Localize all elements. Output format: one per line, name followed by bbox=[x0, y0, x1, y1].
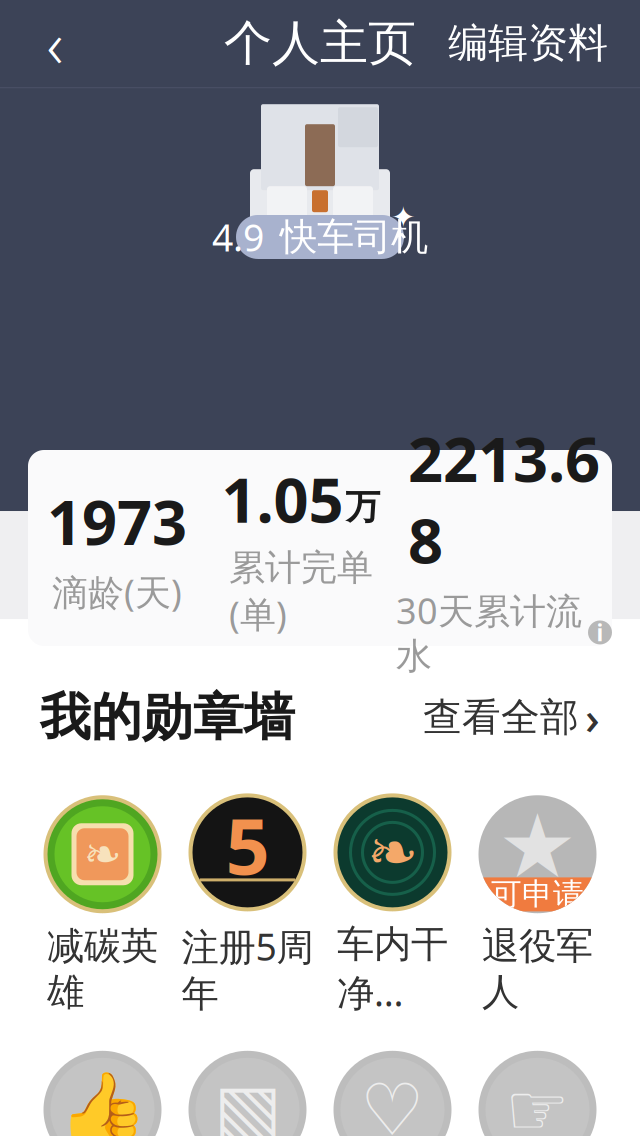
staticText: ★ bbox=[498, 796, 577, 896]
staticText: 滴龄(天) bbox=[52, 568, 182, 616]
staticText: 注册5周年 bbox=[181, 921, 313, 1017]
staticText: 查看全部 bbox=[423, 693, 579, 741]
staticText: 可申请 bbox=[491, 876, 584, 913]
staticText: 我的勋章墙 bbox=[40, 686, 295, 748]
staticText: 1973 bbox=[47, 480, 187, 562]
button[interactable]: 编辑资料 bbox=[436, 8, 620, 78]
staticText: i bbox=[596, 617, 603, 647]
staticText: 累计完单(单) bbox=[229, 546, 373, 638]
staticText: ♡ bbox=[360, 1069, 425, 1136]
button[interactable]: ❧ bbox=[30, 795, 175, 1015]
staticText: 30天累计流水 bbox=[396, 586, 582, 678]
button[interactable]: 查看全部 bbox=[409, 679, 600, 755]
staticText: › bbox=[585, 687, 600, 747]
staticText: 快车司机 bbox=[280, 214, 428, 260]
button[interactable]: Back bbox=[20, 8, 90, 78]
button[interactable]: ❧ bbox=[320, 793, 465, 1017]
button[interactable]: ★ bbox=[465, 795, 610, 1015]
staticText: ❧ bbox=[367, 818, 418, 887]
staticText: ‹ bbox=[46, 1, 63, 86]
staticText: 4.9 bbox=[212, 212, 264, 262]
button[interactable]: Locked badge bbox=[175, 1051, 320, 1136]
staticText: ▧ bbox=[213, 1069, 281, 1136]
button[interactable]: 5 bbox=[175, 793, 320, 1017]
staticText: 车内干净… bbox=[337, 921, 448, 1017]
staticText: 个人主页 bbox=[224, 14, 416, 73]
button[interactable]: Locked badge bbox=[30, 1051, 175, 1136]
staticText: 退役军人 bbox=[482, 923, 593, 1015]
staticText: 👍 bbox=[57, 1069, 147, 1136]
staticText: 1.05 bbox=[221, 458, 343, 540]
staticText: 2213.68 bbox=[408, 417, 600, 580]
button[interactable]: Locked badge bbox=[320, 1051, 465, 1136]
staticText: 减碳英雄 bbox=[47, 923, 158, 1015]
button[interactable]: Locked badge bbox=[465, 1051, 610, 1136]
staticText: ☞ bbox=[505, 1069, 570, 1136]
staticText: ❧ bbox=[83, 828, 121, 880]
staticText: 万 bbox=[345, 486, 380, 528]
staticText: 编辑资料 bbox=[448, 19, 608, 68]
staticText: ✦ bbox=[391, 200, 416, 234]
staticText: 5 bbox=[225, 793, 269, 896]
